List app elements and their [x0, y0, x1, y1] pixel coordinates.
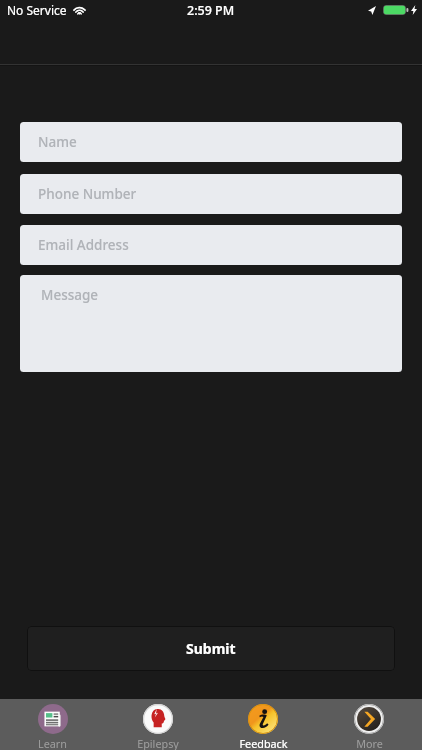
staticText: Email Address [38, 236, 129, 254]
staticText: Name [38, 133, 77, 151]
button[interactable]: Feedback [210, 699, 316, 750]
button[interactable]: Name [20, 122, 402, 162]
button[interactable]: Submit [27, 626, 395, 671]
staticText: More [356, 736, 383, 750]
button[interactable]: Learn [0, 699, 105, 750]
staticText: Submit [186, 639, 236, 658]
staticText: No Service [7, 2, 67, 18]
staticText: Feedback [239, 736, 288, 750]
button[interactable]: Epilepsy [105, 699, 210, 750]
staticText: Learn [38, 736, 67, 750]
button[interactable]: Message [20, 275, 402, 372]
button[interactable]: More [316, 699, 422, 750]
button[interactable]: Email Address [20, 225, 402, 265]
staticText: Phone Number [38, 185, 137, 203]
button[interactable]: Phone Number [20, 174, 402, 214]
staticText: 2:59 PM [187, 2, 235, 19]
staticText: Message [41, 286, 99, 304]
staticText: Epilepsy [137, 736, 179, 750]
